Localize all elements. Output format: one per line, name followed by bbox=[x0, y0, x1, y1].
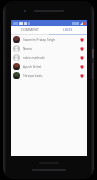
button[interactable]: LIKES bbox=[49, 26, 87, 34]
staticText: Ayush Vishal bbox=[23, 65, 78, 69]
button[interactable]: Unlike bbox=[78, 36, 85, 43]
staticText: Swarnim Pratap Singh bbox=[23, 38, 78, 42]
button[interactable]: Unlike bbox=[78, 72, 85, 79]
button[interactable]: robin mathode bbox=[11, 53, 87, 62]
staticText: robin mathode bbox=[23, 56, 78, 60]
button[interactable]: Nama bbox=[11, 44, 87, 53]
button[interactable]: Unlike bbox=[78, 54, 85, 61]
button[interactable]: Swarnim Pratap Singh bbox=[11, 35, 87, 44]
staticText: COMMENT bbox=[21, 28, 40, 32]
staticText: LIKES bbox=[63, 28, 73, 32]
button[interactable]: Shreyas kadu bbox=[11, 71, 87, 80]
button[interactable]: Ayush Vishal bbox=[11, 62, 87, 71]
staticText: Nama bbox=[23, 47, 78, 51]
button[interactable]: COMMENT bbox=[11, 26, 49, 34]
staticText: Shreyas kadu bbox=[23, 74, 78, 78]
button[interactable]: Unlike bbox=[78, 45, 85, 52]
button[interactable]: Unlike bbox=[78, 63, 85, 70]
